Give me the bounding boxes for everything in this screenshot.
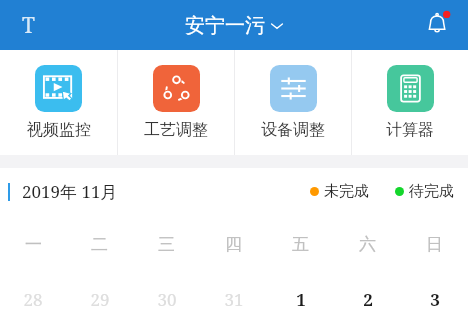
staticText: 视频监控 xyxy=(27,120,91,140)
staticText: T xyxy=(22,11,35,40)
staticText: 3 xyxy=(430,288,440,311)
staticText: 工艺调整 xyxy=(144,120,208,140)
staticText: 三 xyxy=(158,234,175,255)
button[interactable]: 2 xyxy=(334,273,401,325)
button[interactable]: 1 xyxy=(267,273,334,325)
button[interactable]: 计算器 xyxy=(352,50,468,155)
button[interactable]: 3 xyxy=(401,273,468,325)
staticText: 计算器 xyxy=(386,120,434,140)
button[interactable]: Logo xyxy=(6,3,50,47)
staticText: 五 xyxy=(292,234,309,255)
staticText: 六 xyxy=(359,234,376,255)
staticText: 四 xyxy=(225,234,242,255)
staticText: 2019年 11月 xyxy=(22,180,118,203)
button[interactable]: 设备调整 xyxy=(235,50,351,155)
button[interactable]: Notifications xyxy=(416,2,462,48)
button[interactable]: 28 xyxy=(0,273,66,325)
staticText: 一 xyxy=(25,234,42,255)
button[interactable]: 30 xyxy=(133,273,200,325)
button[interactable]: 视频监控 xyxy=(0,50,117,155)
button[interactable]: 29 xyxy=(66,273,133,325)
staticText: 未完成 xyxy=(324,182,369,201)
staticText: 待完成 xyxy=(409,182,454,201)
staticText: 28 xyxy=(23,288,43,311)
button[interactable]: 工艺调整 xyxy=(118,50,234,155)
staticText: 29 xyxy=(90,288,110,311)
button[interactable]: 31 xyxy=(200,273,267,325)
button[interactable]: 安宁一污 xyxy=(185,13,283,38)
staticText: 日 xyxy=(426,234,443,255)
staticText: 二 xyxy=(91,234,108,255)
staticText: 2 xyxy=(363,288,373,311)
staticText: 安宁一污 xyxy=(185,13,265,38)
staticText: 30 xyxy=(157,288,177,311)
staticText: 设备调整 xyxy=(261,120,325,140)
staticText: 31 xyxy=(224,288,244,311)
staticText: 1 xyxy=(296,288,306,311)
